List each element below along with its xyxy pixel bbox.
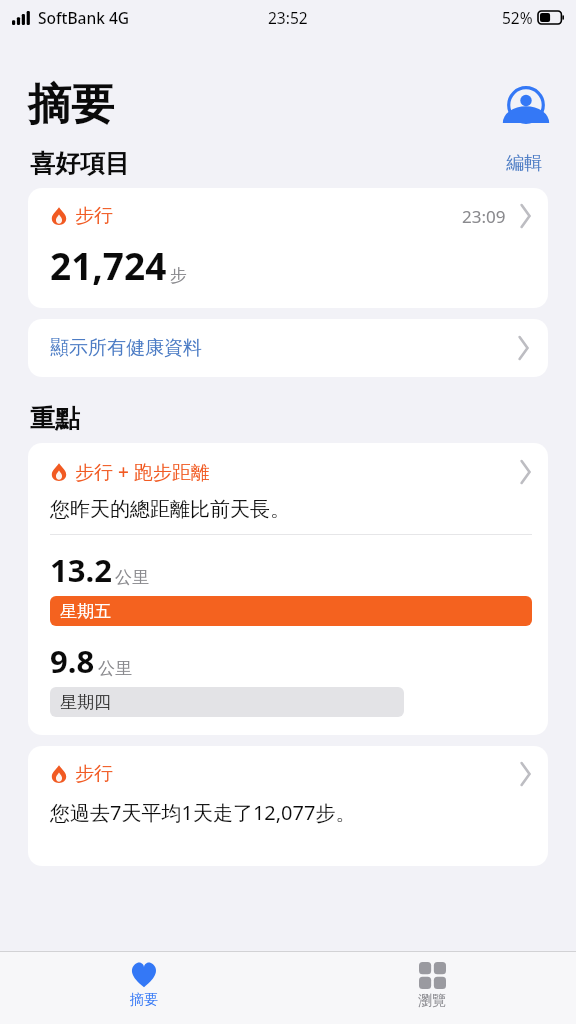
button[interactable]: 瀏覽 [288,952,576,1024]
button[interactable]: 摘要 [0,952,288,1024]
button[interactable]: 編輯 [502,148,546,179]
staticText: 13.2 [50,549,112,591]
button[interactable]: 步行 + 跑步距離 [28,443,548,735]
staticText: 步行 [75,762,113,786]
staticText: 瀏覽 [418,992,446,1010]
button[interactable]: 步行 [28,746,548,866]
staticText: 您昨天的總距離比前天長。 [50,497,290,522]
staticText: SoftBank 4G [38,7,130,28]
staticText: 編輯 [506,152,542,175]
staticText: 星期四 [60,692,111,713]
staticText: 23:09 [462,205,506,228]
staticText: 23:52 [268,7,308,28]
button[interactable]: Profile [504,83,548,127]
staticText: 重點 [30,403,80,434]
staticText: 喜好項目 [30,148,130,179]
staticText: 21,724 [50,240,167,290]
staticText: 顯示所有健康資料 [50,336,202,360]
staticText: 步行 [75,204,113,228]
staticText: 您過去7天平均1天走了12,077步。 [50,799,356,826]
staticText: 公里 [98,658,132,679]
staticText: 9.8 [50,640,95,682]
staticText: 步 [170,265,187,286]
button[interactable]: 步行 [28,188,548,308]
staticText: 52% [502,7,533,28]
staticText: 摘要 [130,991,158,1009]
staticText: 公里 [115,567,149,588]
staticText: 步行 + 跑步距離 [75,459,210,485]
button[interactable]: 顯示所有健康資料 [28,319,548,377]
staticText: 摘要 [28,78,114,132]
staticText: 星期五 [60,601,111,622]
